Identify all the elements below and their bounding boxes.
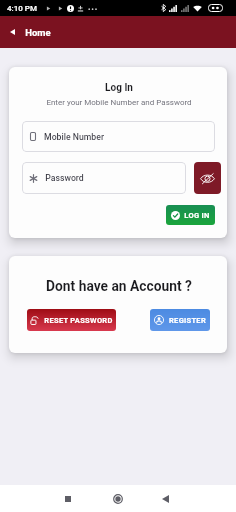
staticText: 4:10 PM <box>7 4 37 13</box>
staticText: Home <box>25 27 51 38</box>
staticText: Dont have an Account ? <box>46 278 192 294</box>
button[interactable]: Password <box>22 162 186 194</box>
button[interactable]: Home <box>93 485 142 512</box>
button[interactable]: Back <box>142 485 192 512</box>
button[interactable]: Recent apps <box>43 485 93 512</box>
staticText: LOG IN <box>184 211 210 220</box>
button[interactable]: Toggle password visibility <box>194 162 221 194</box>
staticText: Mobile Number <box>44 132 104 142</box>
button[interactable]: RESET PASSWORD <box>27 309 116 331</box>
button[interactable]: REGISTER <box>150 309 210 331</box>
button[interactable]: Back <box>0 16 25 48</box>
staticText: Log In <box>105 82 133 94</box>
staticText: REGISTER <box>169 316 206 325</box>
staticText: RESET PASSWORD <box>44 316 113 325</box>
staticText: Password <box>45 173 84 183</box>
staticText: Enter your Mobile Number and Password <box>46 98 192 107</box>
button[interactable]: Mobile Number <box>22 121 215 152</box>
button[interactable]: LOG IN <box>166 205 215 225</box>
